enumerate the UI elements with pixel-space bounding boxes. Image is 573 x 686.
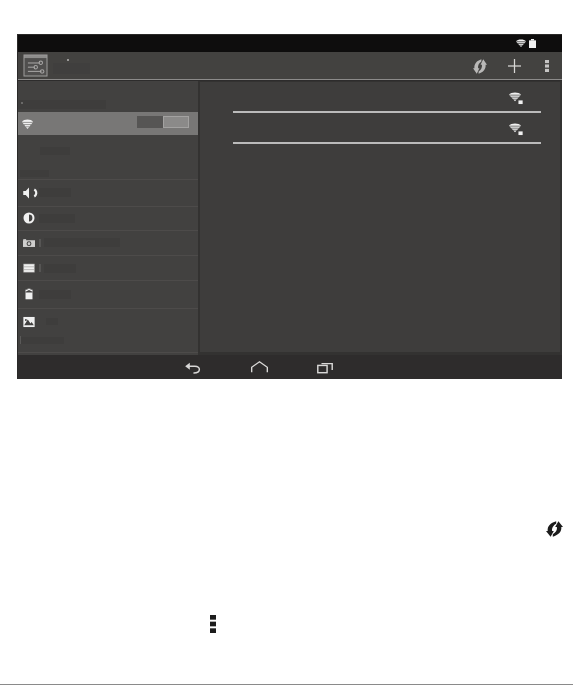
button[interactable]: Back [173, 355, 213, 379]
button[interactable] [18, 308, 198, 335]
button[interactable]: Home [239, 355, 279, 379]
button[interactable] [18, 255, 198, 281]
button[interactable]: Refresh [546, 521, 563, 537]
button[interactable] [18, 280, 198, 308]
button[interactable] [200, 81, 573, 112]
button[interactable]: Overflow menu [210, 615, 216, 633]
button[interactable]: Settings [24, 55, 47, 76]
button[interactable] [200, 112, 573, 143]
button[interactable]: Scan for networks [467, 53, 493, 79]
button[interactable] [18, 206, 198, 230]
button[interactable]: Add network [501, 53, 527, 79]
button[interactable] [18, 179, 198, 206]
button[interactable] [18, 112, 198, 135]
button[interactable]: More options [534, 53, 560, 79]
button[interactable]: Recent apps [305, 355, 345, 379]
button[interactable] [18, 230, 198, 255]
